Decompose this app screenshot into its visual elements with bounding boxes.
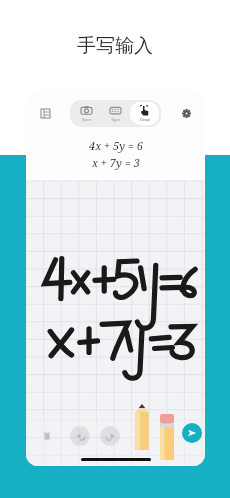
staticText: Draw [140,117,150,122]
button[interactable]: Redo [100,426,120,446]
button[interactable]: Draw [130,102,159,125]
button[interactable]: Submit [182,423,202,443]
button[interactable]: Pencil [134,404,150,450]
staticText: 4x + 5y = 6 [89,138,143,153]
button[interactable]: History [34,102,56,124]
button[interactable]: Delete [39,428,55,444]
button[interactable]: Settings [175,102,197,124]
staticText: x + 7y = 3 [92,155,140,170]
staticText: Type [111,117,120,122]
button[interactable]: Scan [72,102,101,125]
staticText: Scan [82,117,91,122]
button[interactable]: Eraser [160,414,174,460]
staticText: 手写输入 [77,34,153,58]
button[interactable]: Type [101,102,130,125]
button[interactable]: Undo [70,426,90,446]
